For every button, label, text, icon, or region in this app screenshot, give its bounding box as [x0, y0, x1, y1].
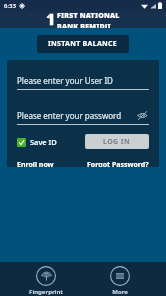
staticText: Please enter your password [17, 110, 135, 121]
staticText: FIRST NATIONAL [57, 11, 120, 21]
staticText: LOG IN [103, 137, 131, 147]
button[interactable]: FIRST NATIONAL [46, 11, 120, 28]
button[interactable]: Save ID [17, 137, 57, 147]
button[interactable]: Show password [135, 108, 149, 122]
button[interactable]: Please enter your User ID [17, 72, 149, 88]
staticText: 6:33 [4, 2, 16, 10]
staticText: INSTANT BALANCE [48, 39, 118, 49]
button[interactable]: INSTANT BALANCE [37, 35, 129, 53]
button[interactable]: Enroll now [17, 160, 54, 167]
button[interactable]: Forgot Password? [87, 160, 149, 167]
staticText: More [112, 288, 128, 296]
staticText: Save ID [30, 137, 57, 147]
staticText: Please enter your User ID [17, 75, 149, 86]
staticText: BANK BEMIDJI [57, 22, 111, 28]
staticText: Fingerprint [29, 288, 63, 296]
button[interactable]: More options [92, 266, 148, 296]
button[interactable]: Please enter your password [17, 107, 149, 123]
button[interactable]: Fingerprint login [18, 266, 74, 296]
button[interactable]: LOG IN [85, 134, 149, 149]
